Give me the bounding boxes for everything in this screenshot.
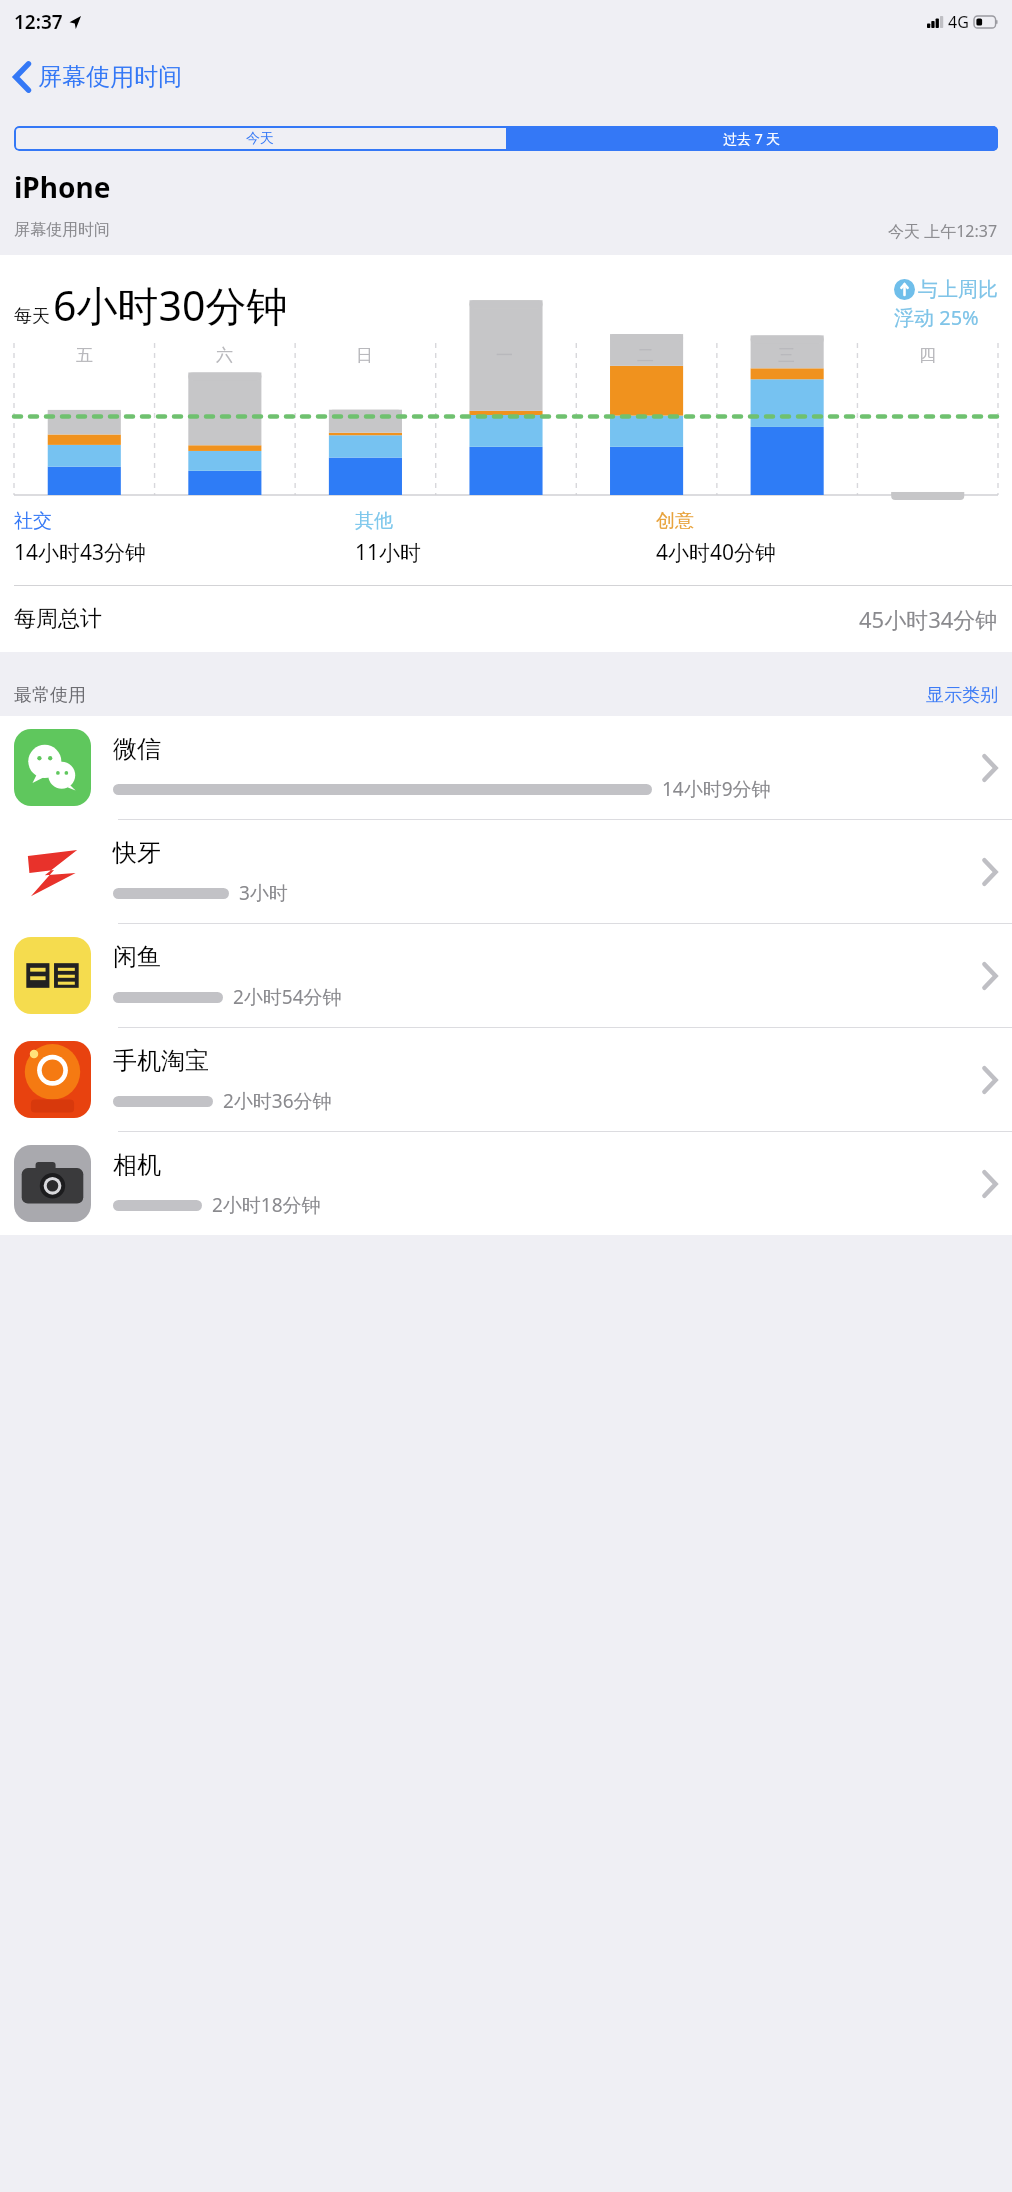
staticText: 屏幕使用时间 bbox=[14, 220, 110, 240]
staticText: 浮动 25% bbox=[894, 304, 979, 331]
button[interactable]: 微信 bbox=[0, 716, 1012, 819]
staticText: 4小时40分钟 bbox=[656, 538, 777, 567]
staticText: 14小时9分钟 bbox=[662, 776, 771, 802]
button[interactable]: 闲鱼 bbox=[0, 924, 1012, 1027]
staticText: 日 bbox=[356, 345, 373, 366]
staticText: 与上周比 bbox=[918, 277, 998, 302]
staticText: 社交 bbox=[14, 509, 52, 533]
button[interactable]: 今天 bbox=[14, 126, 506, 151]
button[interactable]: 快牙 bbox=[0, 820, 1012, 923]
staticText: iPhone bbox=[14, 168, 111, 206]
staticText: 六 bbox=[216, 345, 233, 366]
staticText: 45小时34分钟 bbox=[859, 604, 998, 634]
staticText: 快牙 bbox=[113, 838, 161, 868]
staticText: 三 bbox=[778, 345, 795, 366]
staticText: 五 bbox=[76, 345, 93, 366]
button[interactable]: 手机淘宝 bbox=[0, 1028, 1012, 1131]
button[interactable]: 显示类别 bbox=[926, 684, 998, 707]
staticText: 11小时 bbox=[355, 538, 422, 567]
staticText: 屏幕使用时间 bbox=[38, 62, 182, 92]
staticText: 相机 bbox=[113, 1150, 161, 1180]
staticText: 二 bbox=[637, 345, 654, 366]
staticText: 显示类别 bbox=[926, 684, 998, 707]
staticText: 今天 bbox=[246, 130, 274, 148]
staticText: 每天 bbox=[14, 305, 50, 328]
staticText: 每周总计 bbox=[14, 605, 102, 633]
button[interactable]: 过去 7 天 bbox=[506, 126, 998, 151]
staticText: 2小时18分钟 bbox=[212, 1192, 321, 1218]
staticText: 6小时30分钟 bbox=[53, 277, 288, 333]
staticText: 最常使用 bbox=[14, 684, 86, 707]
button[interactable]: Back bbox=[0, 44, 1012, 110]
button[interactable]: 每周总计 bbox=[14, 586, 998, 652]
staticText: 3小时 bbox=[239, 880, 288, 906]
staticText: 4G bbox=[948, 11, 969, 33]
staticText: 过去 7 天 bbox=[723, 129, 781, 148]
staticText: 微信 bbox=[113, 734, 161, 764]
staticText: 2小时54分钟 bbox=[233, 984, 342, 1010]
staticText: 手机淘宝 bbox=[113, 1046, 209, 1076]
staticText: 今天 上午12:37 bbox=[888, 220, 998, 242]
staticText: 12:37 bbox=[14, 9, 63, 35]
staticText: 14小时43分钟 bbox=[14, 538, 147, 567]
button[interactable]: 相机 bbox=[0, 1132, 1012, 1235]
staticText: 闲鱼 bbox=[113, 942, 161, 972]
staticText: 创意 bbox=[656, 509, 694, 533]
staticText: 2小时36分钟 bbox=[223, 1088, 332, 1114]
staticText: 其他 bbox=[355, 509, 393, 533]
staticText: 四 bbox=[919, 345, 936, 366]
